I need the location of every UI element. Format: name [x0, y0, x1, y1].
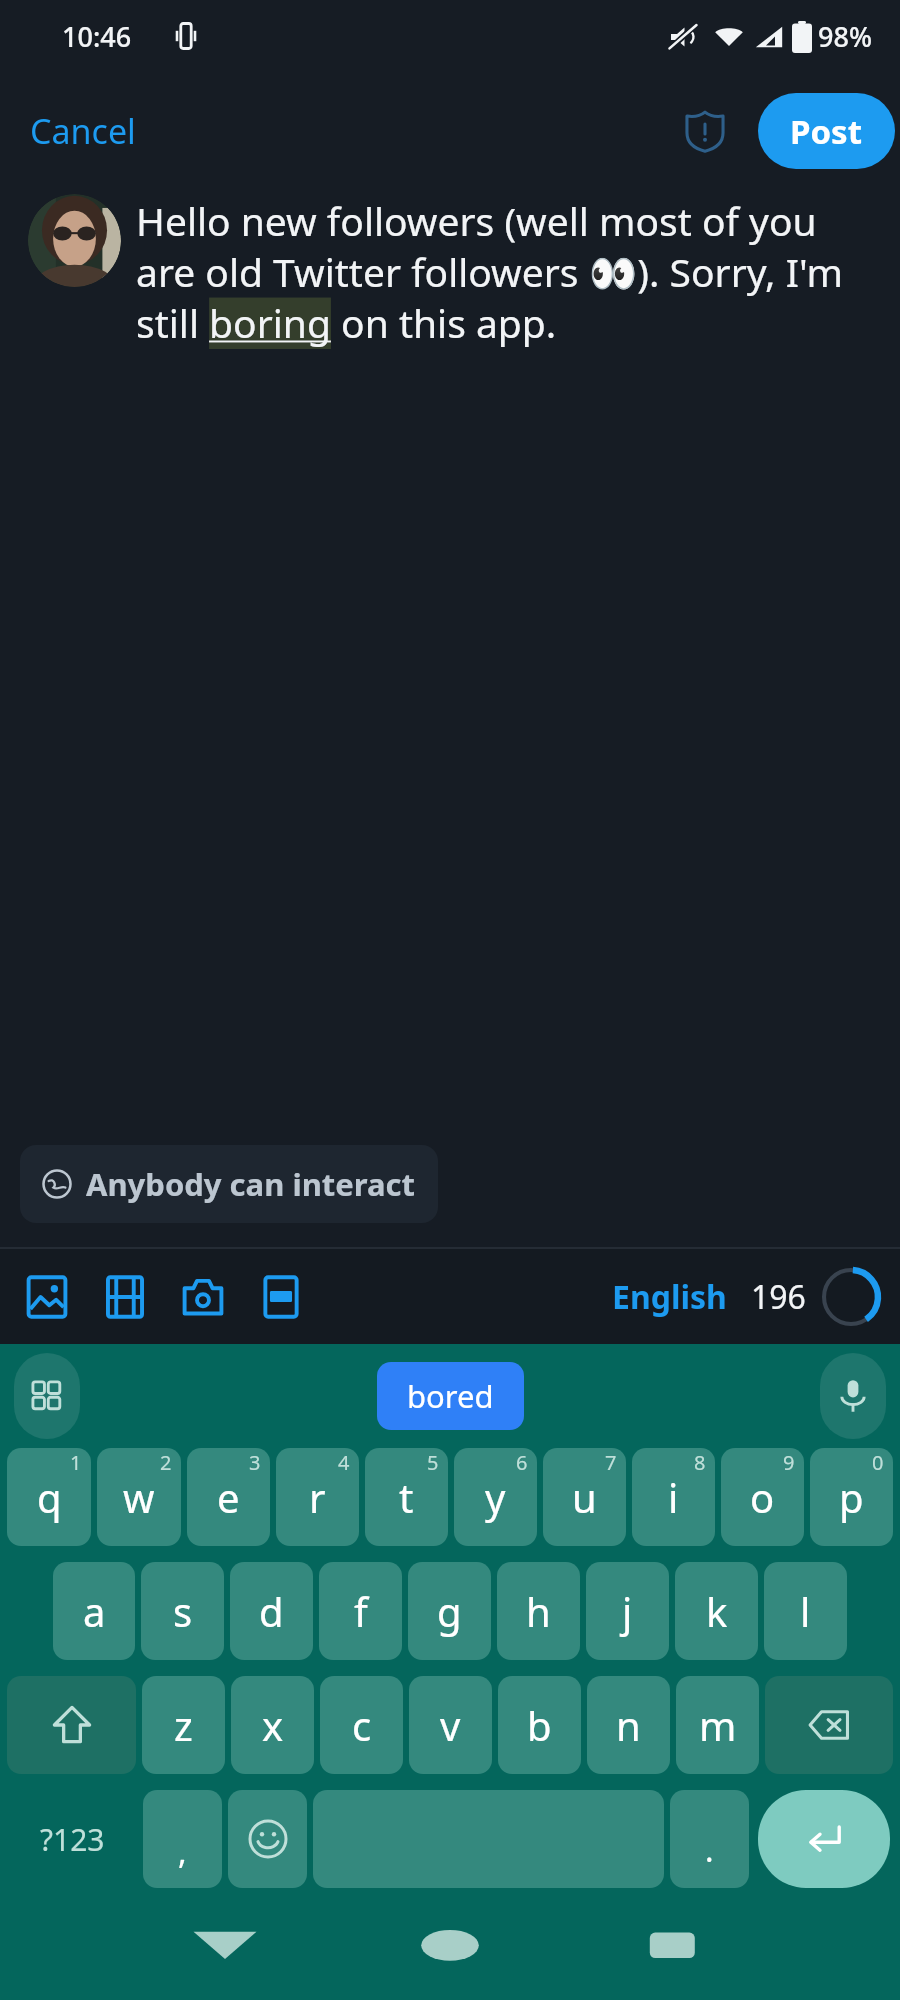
staticText: k: [706, 1584, 728, 1638]
button[interactable]: o: [721, 1448, 804, 1546]
button[interactable]: w: [97, 1448, 181, 1546]
staticText: ,: [178, 1830, 187, 1874]
staticText: 98%: [818, 18, 872, 55]
staticText: Anybody can interact: [86, 1163, 416, 1205]
button[interactable]: Add video: [86, 1258, 164, 1336]
button[interactable]: f: [319, 1562, 402, 1660]
staticText: 7: [605, 1449, 617, 1476]
button[interactable]: i: [632, 1448, 715, 1546]
button[interactable]: bored: [377, 1362, 524, 1430]
button[interactable]: p: [810, 1448, 893, 1546]
staticText: 2: [160, 1449, 172, 1476]
staticText: 10:46: [62, 18, 132, 55]
button[interactable]: h: [497, 1562, 580, 1660]
button[interactable]: Emoji: [228, 1790, 307, 1888]
button[interactable]: Camera: [164, 1258, 242, 1336]
staticText: .: [705, 1828, 714, 1872]
staticText: r: [309, 1470, 326, 1524]
staticText: 5: [427, 1449, 439, 1476]
staticText: q: [37, 1470, 62, 1524]
staticText: 4: [338, 1449, 350, 1476]
button[interactable]: Post: [758, 93, 895, 169]
staticText: e: [217, 1470, 240, 1524]
button[interactable]: j: [586, 1562, 669, 1660]
button[interactable]: Enter: [758, 1790, 890, 1888]
button[interactable]: Profile photo: [28, 194, 121, 287]
staticText: d: [259, 1584, 284, 1638]
button[interactable]: g: [408, 1562, 491, 1660]
button[interactable]: y: [454, 1448, 537, 1546]
button[interactable]: ?123: [7, 1790, 137, 1888]
staticText: b: [527, 1698, 552, 1752]
staticText: a: [83, 1584, 106, 1638]
staticText: 0: [872, 1449, 884, 1476]
staticText: bored: [407, 1375, 494, 1417]
staticText: 1: [70, 1449, 82, 1476]
button[interactable]: a: [53, 1562, 135, 1660]
staticText: y: [485, 1470, 506, 1524]
staticText: m: [699, 1698, 737, 1752]
button[interactable]: m: [676, 1676, 759, 1774]
staticText: 3: [249, 1449, 261, 1476]
button[interactable]: Keyboard options: [14, 1353, 80, 1439]
staticText: English: [612, 1275, 727, 1319]
button[interactable]: z: [142, 1676, 225, 1774]
staticText: Post: [790, 109, 863, 154]
staticText: o: [750, 1470, 775, 1524]
button[interactable]: Voice input: [820, 1353, 886, 1439]
button[interactable]: v: [409, 1676, 492, 1774]
button[interactable]: Shift: [7, 1676, 136, 1774]
button[interactable]: Anybody can interact: [20, 1145, 438, 1223]
button[interactable]: l: [764, 1562, 847, 1660]
button[interactable]: b: [498, 1676, 581, 1774]
staticText: 6: [516, 1449, 528, 1476]
button[interactable]: Content warning: [670, 96, 740, 166]
staticText: 8: [694, 1449, 706, 1476]
button[interactable]: s: [141, 1562, 224, 1660]
button[interactable]: ,: [143, 1790, 222, 1888]
staticText: Hello new followers (well most of you ar…: [136, 194, 878, 349]
button[interactable]: .: [670, 1790, 749, 1888]
button[interactable]: q: [7, 1448, 91, 1546]
button[interactable]: k: [675, 1562, 758, 1660]
button[interactable]: Add GIF: [242, 1258, 320, 1336]
staticText: n: [616, 1698, 641, 1752]
staticText: u: [572, 1470, 597, 1524]
button[interactable]: t: [365, 1448, 448, 1546]
button[interactable]: Backspace: [765, 1676, 893, 1774]
button[interactable]: u: [543, 1448, 626, 1546]
staticText: i: [668, 1470, 679, 1524]
staticText: j: [622, 1584, 633, 1638]
button[interactable]: English: [606, 1269, 733, 1325]
button[interactable]: e: [187, 1448, 270, 1546]
staticText: g: [437, 1584, 462, 1638]
staticText: x: [262, 1698, 284, 1752]
button[interactable]: Space: [313, 1790, 664, 1888]
staticText: 196: [751, 1275, 806, 1319]
button[interactable]: x: [231, 1676, 314, 1774]
staticText: w: [123, 1470, 155, 1524]
staticText: c: [352, 1698, 372, 1752]
button[interactable]: d: [230, 1562, 313, 1660]
staticText: p: [839, 1470, 864, 1524]
staticText: s: [173, 1584, 193, 1638]
button[interactable]: c: [320, 1676, 403, 1774]
staticText: v: [440, 1698, 461, 1752]
staticText: f: [354, 1584, 368, 1638]
button[interactable]: Cancel: [12, 98, 154, 164]
button[interactable]: Add photo: [8, 1258, 86, 1336]
staticText: Cancel: [30, 108, 136, 154]
staticText: ?123: [40, 1819, 105, 1860]
staticText: 9: [783, 1449, 795, 1476]
staticText: z: [174, 1698, 193, 1752]
staticText: l: [800, 1584, 811, 1638]
button[interactable]: n: [587, 1676, 670, 1774]
staticText: h: [526, 1584, 551, 1638]
button[interactable]: r: [276, 1448, 359, 1546]
staticText: t: [399, 1470, 414, 1524]
